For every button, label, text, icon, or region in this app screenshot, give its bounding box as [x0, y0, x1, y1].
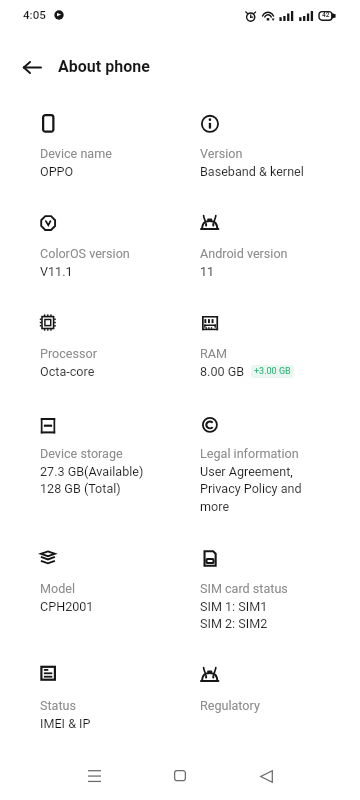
button[interactable]: SIM card status — [200, 548, 334, 631]
staticText: User Agreement, Privacy Policy and more — [200, 464, 302, 514]
button[interactable]: Model — [40, 548, 176, 614]
button[interactable]: Back — [248, 756, 284, 796]
staticText: Device name — [40, 146, 112, 161]
button[interactable]: Android version — [200, 213, 334, 279]
staticText: Status — [40, 698, 77, 713]
button[interactable]: Status — [40, 665, 176, 731]
staticText: RAM — [200, 346, 227, 361]
staticText: OPPO — [40, 164, 74, 179]
button[interactable]: Navigate up — [14, 49, 50, 85]
button[interactable]: Legal information — [200, 413, 334, 514]
button[interactable]: Home — [162, 756, 198, 796]
button[interactable]: Regulatory — [200, 665, 334, 713]
staticText: Baseband & kernel — [200, 164, 304, 179]
button[interactable]: Recent apps — [76, 756, 112, 796]
staticText: Regulatory — [200, 698, 260, 713]
staticText: Model — [40, 581, 76, 596]
staticText: SIM card status — [200, 581, 288, 596]
staticText: 8.00 GB — [200, 364, 245, 379]
staticText: Version — [200, 146, 243, 161]
staticText: Device storage — [40, 446, 123, 461]
staticText: SIM 1: SIM1 SIM 2: SIM2 — [200, 599, 268, 631]
button[interactable]: Version — [200, 113, 334, 179]
staticText: +3.00 GB — [254, 366, 291, 377]
staticText: V11.1 — [40, 264, 73, 279]
staticText: 11 — [200, 264, 215, 279]
staticText: IMEI & IP — [40, 716, 91, 731]
staticText: CPH2001 — [40, 599, 94, 614]
staticText: 27.3 GB(Available) 128 GB (Total) — [40, 464, 144, 496]
button[interactable]: Device storage — [40, 413, 176, 496]
button[interactable]: RAM — [200, 313, 334, 379]
staticText: Octa-core — [40, 364, 95, 379]
staticText: About phone — [58, 57, 150, 76]
staticText: Processor — [40, 346, 97, 361]
staticText: 42 — [322, 11, 330, 19]
staticText: 4:05 — [23, 8, 46, 22]
staticText: Android version — [200, 246, 288, 261]
button[interactable]: Device name — [40, 113, 176, 179]
button[interactable]: ColorOS version — [40, 213, 176, 279]
staticText: ColorOS version — [40, 246, 130, 261]
button[interactable]: Processor — [40, 313, 176, 379]
staticText: Legal information — [200, 446, 299, 461]
